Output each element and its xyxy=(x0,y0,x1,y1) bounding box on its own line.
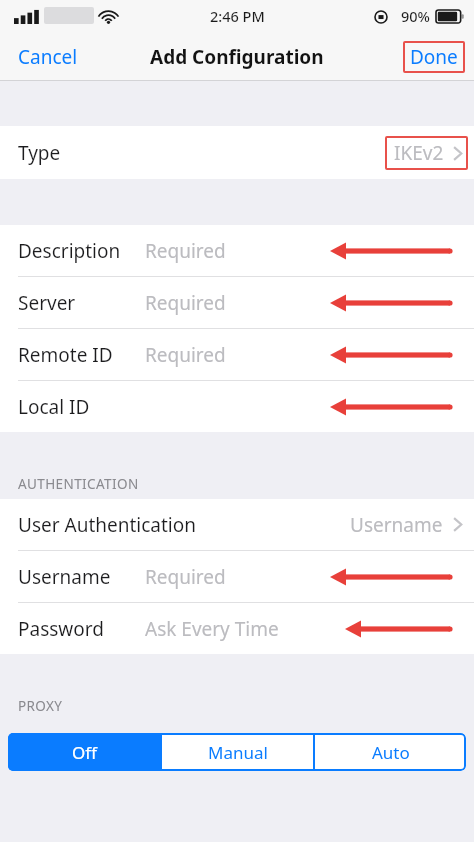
button[interactable]: Done xyxy=(403,41,465,73)
button[interactable]: Cancel xyxy=(0,38,96,76)
staticText: PROXY xyxy=(18,697,63,715)
button[interactable]: Local ID xyxy=(0,381,474,432)
button[interactable]: Manual xyxy=(162,733,313,771)
staticText: Auto xyxy=(372,741,410,764)
staticText: Off xyxy=(72,741,97,764)
button[interactable]: Server xyxy=(0,277,474,328)
staticText: Local ID xyxy=(18,394,90,420)
button[interactable]: Username xyxy=(0,551,474,602)
button[interactable]: Type xyxy=(0,126,474,179)
staticText: Type xyxy=(18,140,61,166)
staticText: Username xyxy=(18,564,111,590)
staticText: IKEv2 xyxy=(394,140,444,166)
staticText: Required xyxy=(145,290,226,316)
staticText: Add Configuration xyxy=(150,44,324,70)
button[interactable]: Description xyxy=(0,225,474,276)
button[interactable]: Off xyxy=(8,733,160,771)
staticText: Done xyxy=(410,44,458,70)
staticText: Username xyxy=(350,512,443,538)
staticText: Ask Every Time xyxy=(145,616,279,642)
staticText: Server xyxy=(18,290,76,316)
staticText: User Authentication xyxy=(18,512,196,538)
staticText: Required xyxy=(145,238,226,264)
staticText: AUTHENTICATION xyxy=(18,475,139,493)
staticText: Required xyxy=(145,564,226,590)
staticText: Description xyxy=(18,238,121,264)
staticText: Password xyxy=(18,616,104,642)
button[interactable]: Password xyxy=(0,603,474,654)
staticText: 90% xyxy=(401,6,430,26)
staticText: Cancel xyxy=(18,44,78,70)
staticText: 2:46 PM xyxy=(210,6,265,26)
staticText: Remote ID xyxy=(18,342,113,368)
staticText: Required xyxy=(145,342,226,368)
button[interactable]: Remote ID xyxy=(0,329,474,380)
staticText: Manual xyxy=(208,741,268,764)
button[interactable]: User Authentication xyxy=(0,499,474,550)
button[interactable]: Auto xyxy=(315,733,466,771)
